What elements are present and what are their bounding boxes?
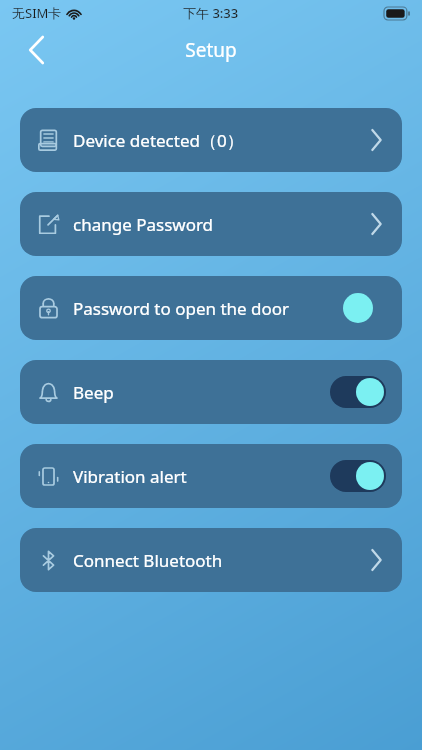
button[interactable]: Device detected（0） bbox=[20, 108, 402, 172]
button[interactable]: change Password bbox=[20, 192, 402, 256]
button[interactable]: Toggle Beep bbox=[330, 376, 386, 408]
button[interactable]: Connect Bluetooth bbox=[20, 528, 402, 592]
staticText: 下午 3:33 bbox=[183, 4, 239, 22]
button[interactable]: Password to open the door bbox=[20, 276, 402, 340]
staticText: Vibration alert bbox=[73, 465, 330, 488]
button[interactable]: Beep bbox=[20, 360, 402, 424]
staticText: 无SIM卡 bbox=[12, 4, 62, 22]
staticText: Device detected（0） bbox=[73, 129, 371, 152]
button[interactable]: Vibration alert bbox=[20, 444, 402, 508]
button[interactable]: Toggle Password to open the door bbox=[330, 292, 386, 324]
staticText: Connect Bluetooth bbox=[73, 549, 371, 572]
staticText: change Password bbox=[73, 213, 371, 236]
staticText: Password to open the door bbox=[73, 297, 330, 320]
button[interactable]: Back bbox=[14, 28, 58, 72]
button[interactable]: Toggle Vibration alert bbox=[330, 460, 386, 492]
staticText: Beep bbox=[73, 381, 330, 404]
staticText: Setup bbox=[185, 37, 237, 63]
